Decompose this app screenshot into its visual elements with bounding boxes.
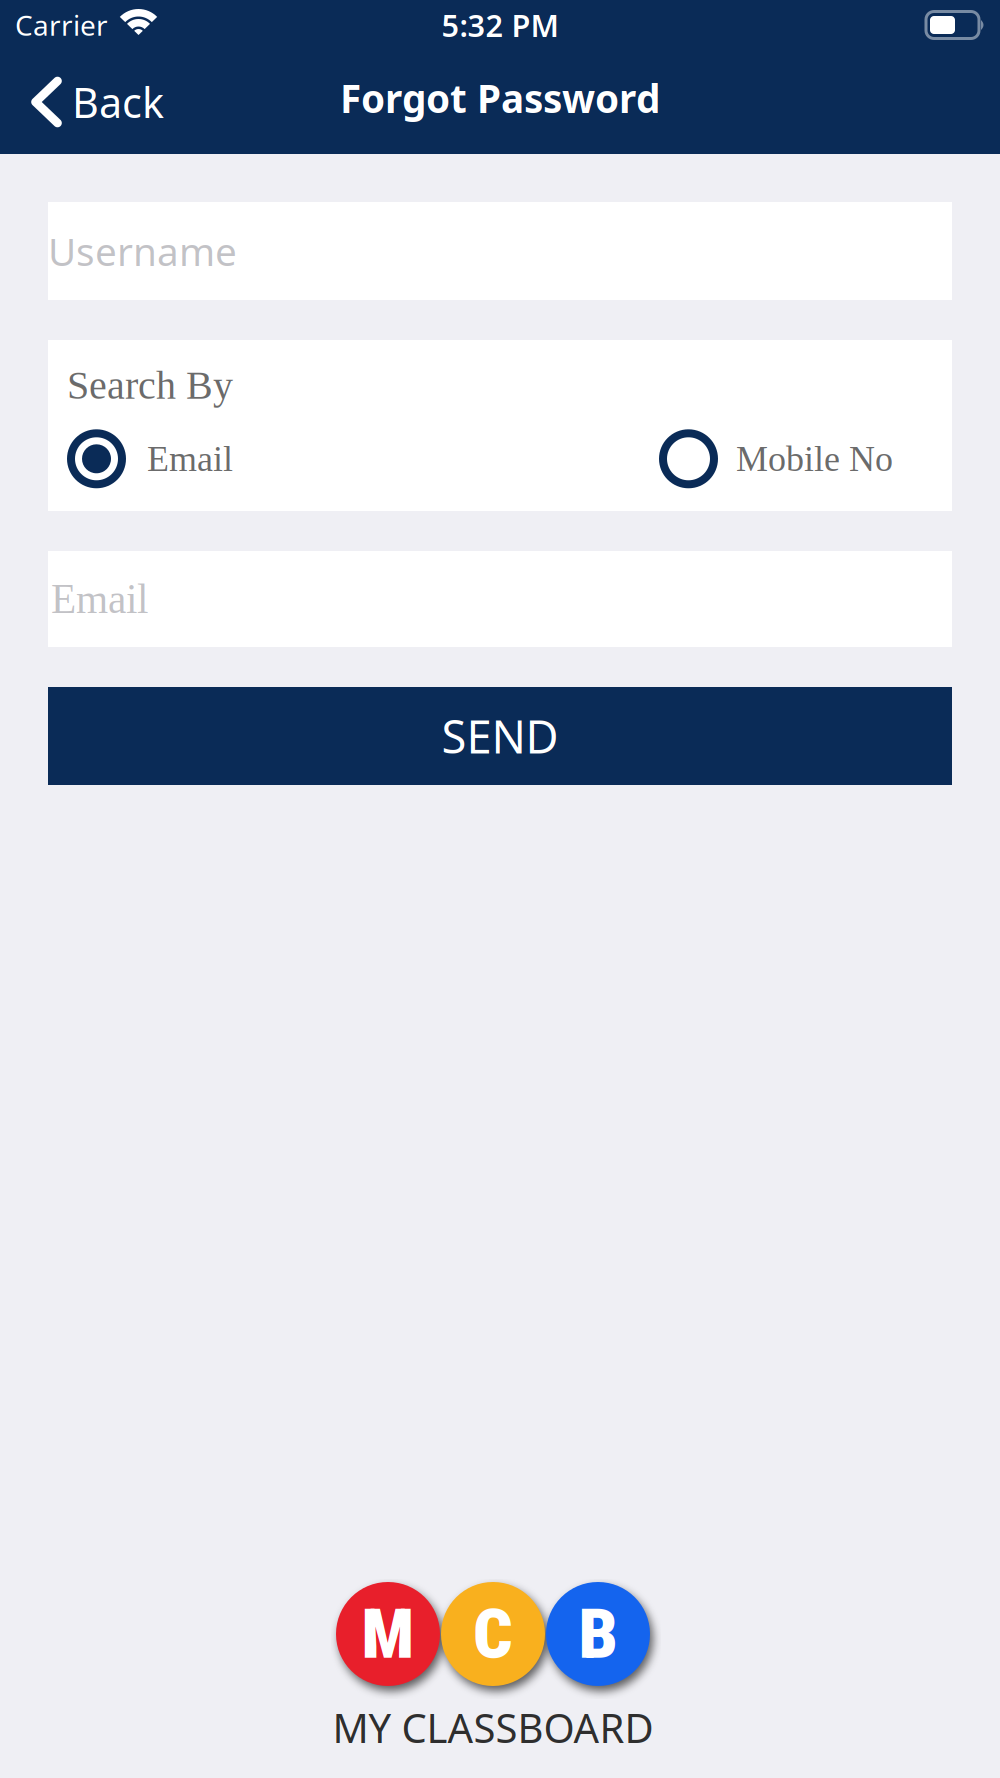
staticText: Forgot Password bbox=[340, 72, 660, 124]
staticText: Search By bbox=[67, 363, 233, 407]
staticText: Back bbox=[72, 74, 164, 130]
staticText: M bbox=[361, 1593, 414, 1675]
staticText: SEND bbox=[441, 705, 558, 767]
staticText: 5:32 PM bbox=[441, 4, 558, 46]
button[interactable]: Back bbox=[0, 58, 186, 146]
staticText: Mobile No bbox=[736, 439, 893, 479]
staticText: Email bbox=[147, 439, 233, 479]
staticText: Carrier bbox=[15, 6, 108, 44]
staticText: MY CLASSBOARD bbox=[332, 1700, 653, 1755]
staticText: B bbox=[578, 1593, 617, 1675]
button[interactable]: Email bbox=[67, 429, 233, 488]
button[interactable]: SEND bbox=[48, 687, 952, 785]
staticText: Username bbox=[48, 225, 237, 277]
staticText: C bbox=[473, 1593, 513, 1675]
button[interactable]: Mobile No bbox=[659, 429, 893, 488]
staticText: Email bbox=[51, 576, 148, 622]
